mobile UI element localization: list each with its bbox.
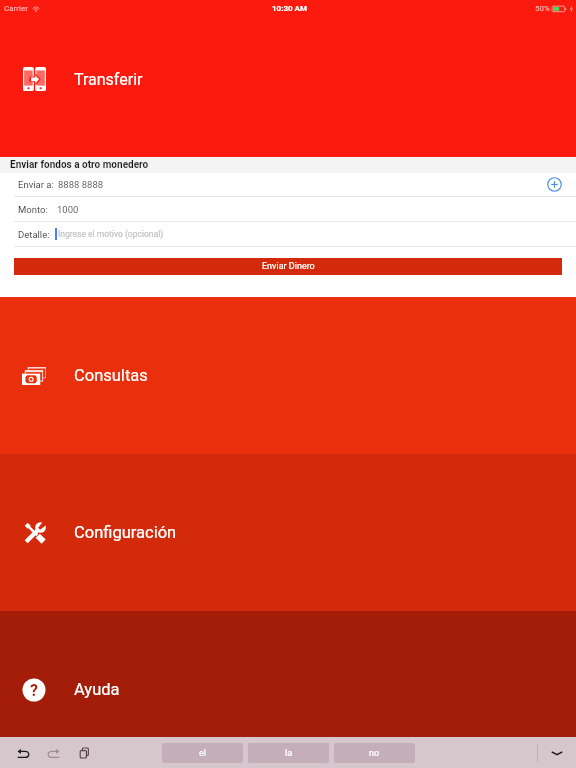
staticText: Detalle: <box>18 229 50 240</box>
button[interactable]: Configuración <box>0 454 576 611</box>
button[interactable]: Deshacer <box>10 740 36 766</box>
button[interactable]: Ocultar teclado <box>538 737 575 768</box>
staticText: Enviar Dinero <box>262 261 315 272</box>
staticText: la <box>285 748 293 759</box>
staticText: el <box>199 748 206 759</box>
button[interactable]: ? <box>0 611 576 768</box>
staticText: 50% <box>535 4 550 13</box>
button[interactable]: Pegar <box>72 740 98 766</box>
staticText: Carrier <box>4 4 28 13</box>
staticText: 1000 <box>57 204 79 215</box>
staticText: no <box>369 748 380 759</box>
staticText: Ayuda <box>74 680 120 699</box>
button[interactable]: Consultas <box>0 297 576 454</box>
staticText: 8888 8888 <box>58 179 104 190</box>
staticText: 10:30 AM <box>272 4 308 13</box>
button[interactable]: Enviar Dinero <box>14 258 562 275</box>
button[interactable]: Agregar contacto <box>541 173 567 196</box>
staticText: Transferir <box>74 70 143 89</box>
staticText: Monto: <box>18 204 48 215</box>
staticText: Configuración <box>74 523 177 542</box>
staticText: Consultas <box>74 366 148 385</box>
staticText: Enviar a: <box>18 179 54 190</box>
button[interactable]: el <box>162 743 243 763</box>
staticText: Enviar fondos a otro monedero <box>10 159 149 171</box>
button[interactable]: la <box>248 743 329 763</box>
button[interactable]: Rehacer <box>40 740 66 766</box>
staticText: ? <box>30 681 38 700</box>
staticText: Ingrese el motivo (opcional) <box>58 229 164 239</box>
button[interactable]: no <box>334 743 415 763</box>
